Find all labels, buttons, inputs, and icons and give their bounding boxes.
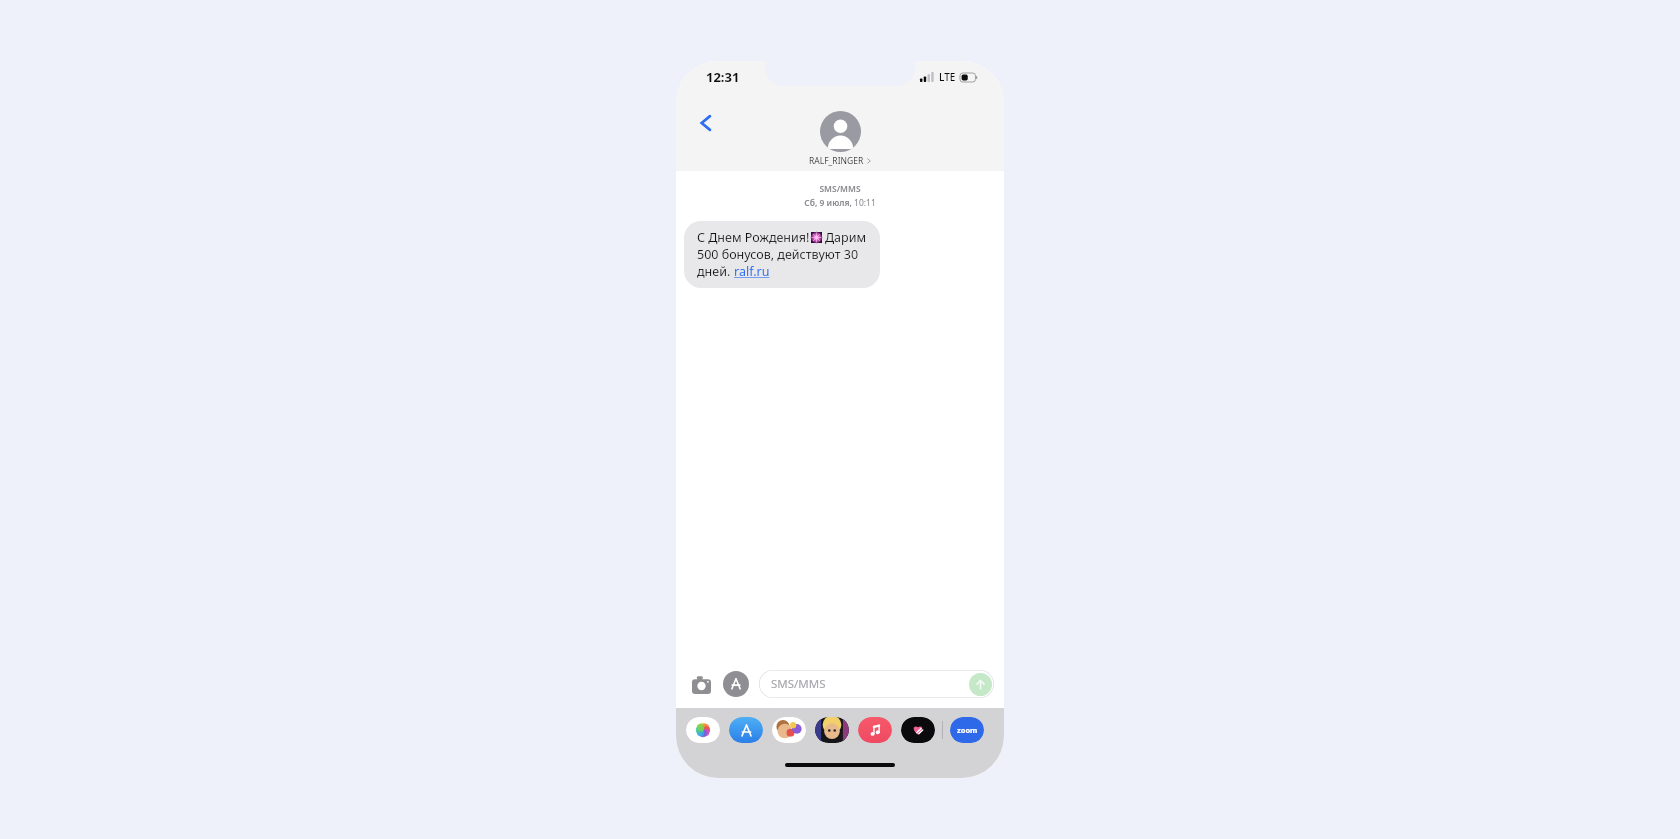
- staticText: zoom: [957, 725, 978, 735]
- button[interactable]: RALF_RINGER: [809, 111, 872, 167]
- button[interactable]: Send: [969, 673, 992, 696]
- staticText: SMS/MMS: [771, 676, 826, 692]
- staticText: С Днем Рождения!: [697, 229, 810, 246]
- button[interactable]: Camera: [686, 669, 716, 699]
- staticText: Дарим: [825, 229, 867, 246]
- button[interactable]: Photos: [686, 717, 720, 743]
- staticText: дней.: [697, 263, 734, 280]
- button[interactable]: Memoji: [815, 717, 849, 743]
- button[interactable]: Back: [686, 103, 726, 143]
- button[interactable]: SMS/MMS: [759, 670, 994, 698]
- button[interactable]: App Store: [729, 717, 763, 743]
- staticText: 500 бонусов, действуют 30: [697, 246, 859, 263]
- button[interactable]: App Store: [723, 671, 749, 697]
- button[interactable]: Fitness: [901, 717, 935, 743]
- staticText: RALF_RINGER: [809, 155, 864, 167]
- button[interactable]: ralf.ru: [734, 263, 770, 280]
- button[interactable]: Music: [858, 717, 892, 743]
- staticText: SMS/MMS: [676, 183, 1004, 195]
- staticText: 12:31: [706, 68, 740, 86]
- button[interactable]: С Днем Рождения!: [684, 221, 880, 288]
- button[interactable]: Zoom: [950, 717, 984, 743]
- button[interactable]: Memoji stickers: [772, 717, 806, 743]
- staticText: LTE: [939, 70, 956, 84]
- staticText: Сб, 9 июля, 10:11: [676, 197, 1004, 209]
